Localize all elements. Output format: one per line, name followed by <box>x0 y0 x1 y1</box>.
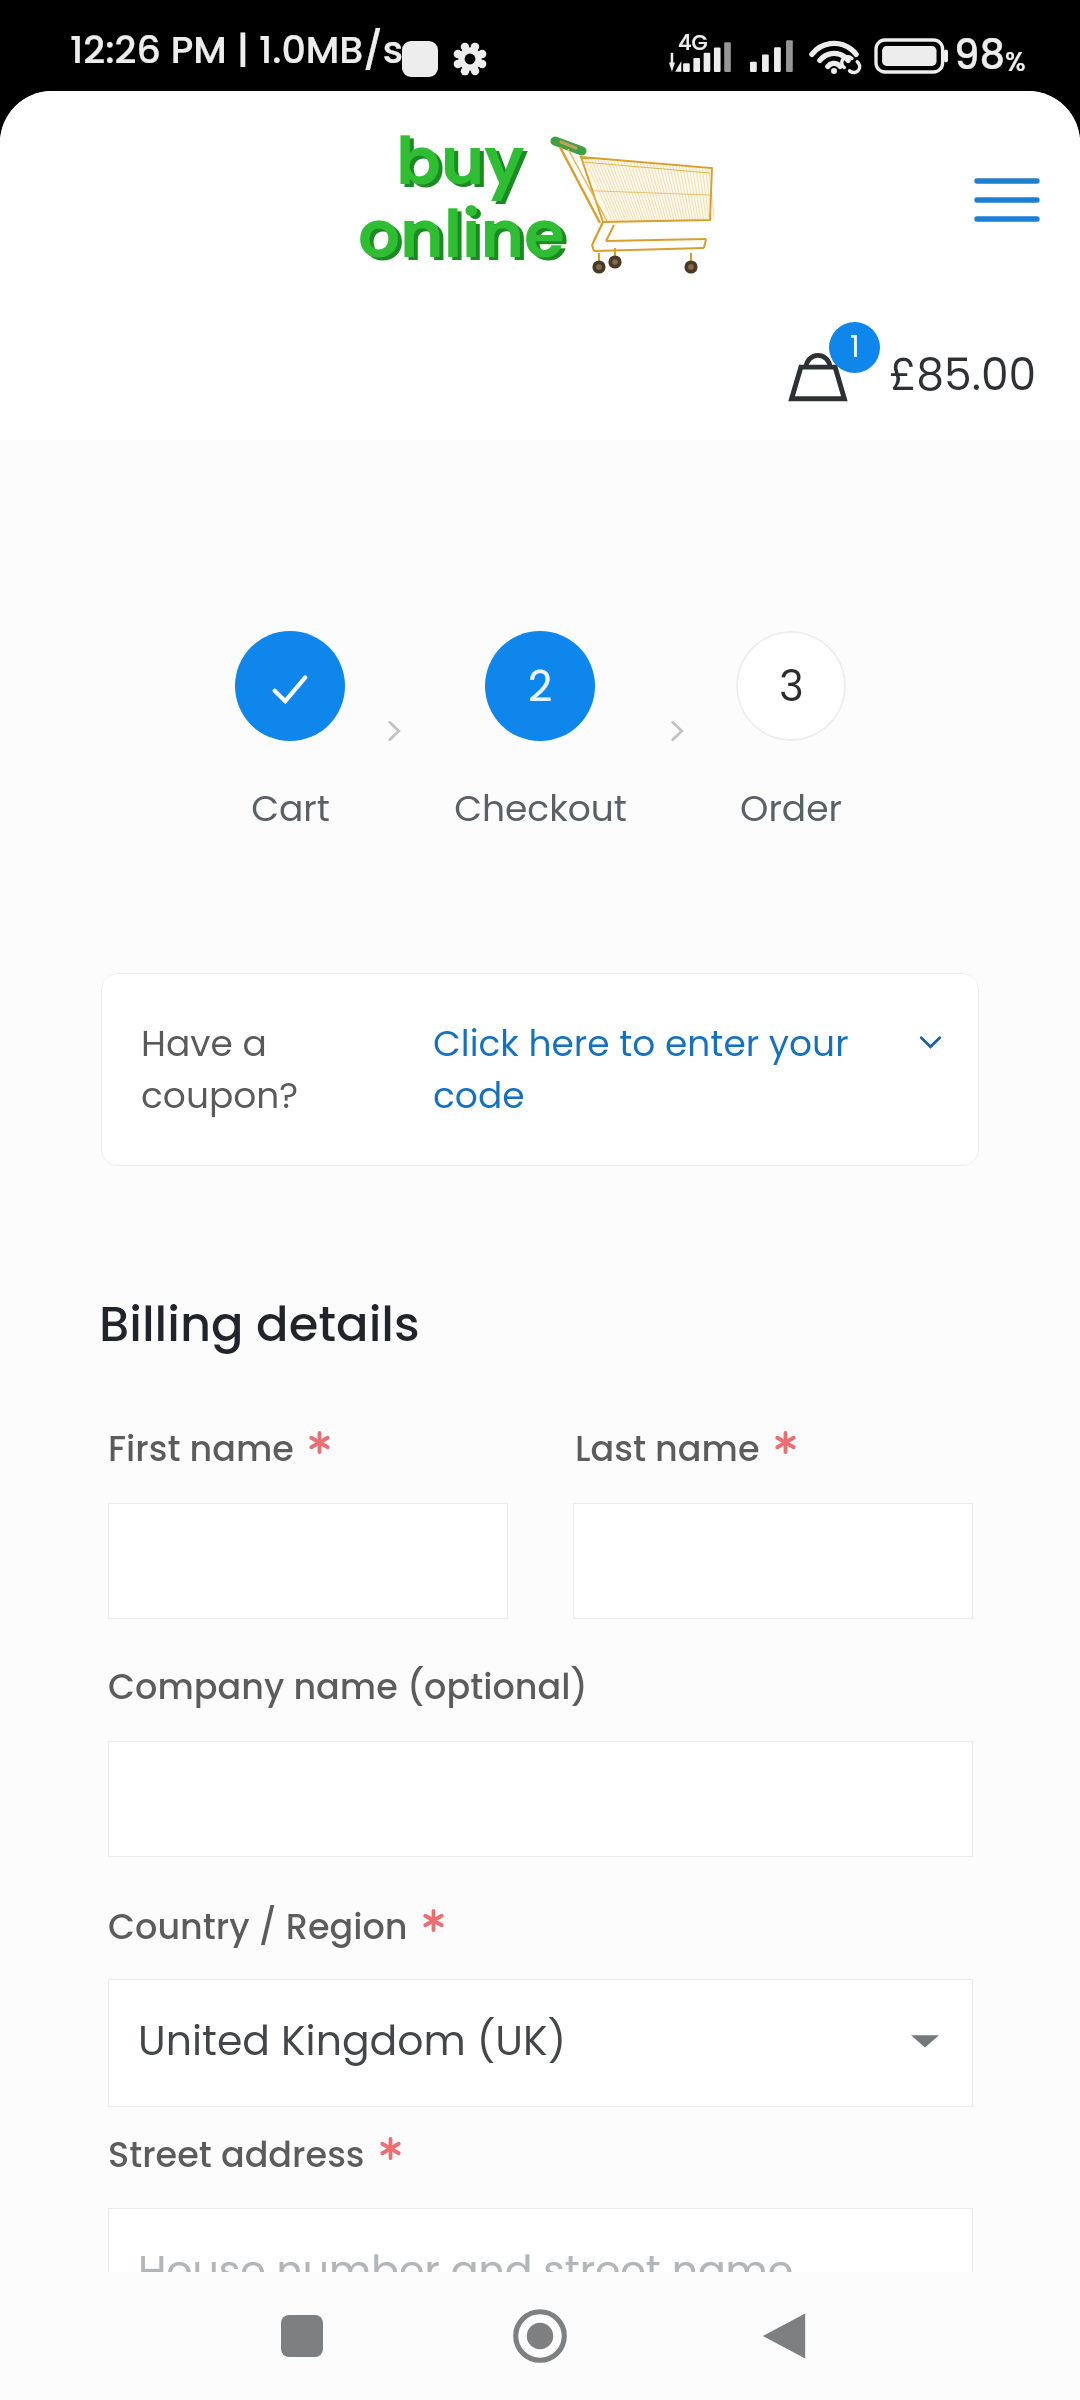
staticText: £85.00 <box>889 344 1037 406</box>
button[interactable]: Recents <box>212 2272 392 2400</box>
staticText: Have a coupon? <box>141 1018 299 1121</box>
button[interactable]: 3 <box>666 631 916 833</box>
staticText: buy <box>400 118 529 210</box>
staticText: % <box>1005 44 1026 80</box>
staticText: Company name (optional) <box>108 1662 588 1711</box>
staticText: Last name <box>575 1424 760 1473</box>
staticText: Click here to enter your code <box>433 1018 849 1121</box>
button[interactable]: 1 <box>778 352 1058 462</box>
staticText: buy <box>396 115 525 207</box>
button[interactable]: United Kingdom (UK) <box>108 1979 973 2107</box>
staticText: 2 <box>528 657 553 716</box>
staticText: Billing details <box>99 1291 420 1358</box>
staticText: Cart <box>251 783 330 833</box>
staticText: 1 <box>850 326 860 368</box>
button[interactable]: 2 <box>415 631 665 833</box>
staticText: 3 <box>779 657 804 716</box>
button[interactable]: Home <box>450 2272 630 2400</box>
staticText: Order <box>740 783 842 833</box>
staticText: online <box>358 188 565 280</box>
staticText: 4G <box>678 28 708 57</box>
staticText: 98 <box>954 27 1005 83</box>
staticText: United Kingdom (UK) <box>138 2012 567 2069</box>
staticText: Checkout <box>454 783 627 833</box>
staticText: online <box>362 191 569 283</box>
staticText: 12:26 PM | 1.0MB/s <box>70 23 404 76</box>
button[interactable]: House number and street name <box>108 2208 973 2336</box>
staticText: House number and street name <box>138 2242 794 2299</box>
staticText: First name <box>108 1424 294 1473</box>
staticText: Street address <box>108 2130 365 2179</box>
button[interactable]: Open menu <box>947 145 1067 239</box>
button[interactable]: Back <box>694 2272 874 2400</box>
staticText: Country / Region <box>108 1902 408 1951</box>
button[interactable]: Cart <box>165 631 415 833</box>
button[interactable]: Have a coupon? <box>101 973 979 1166</box>
